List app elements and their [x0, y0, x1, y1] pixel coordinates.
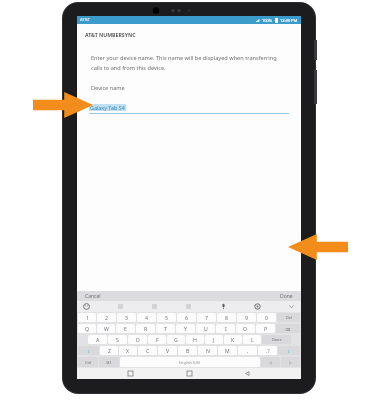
staticText: V: [166, 347, 170, 354]
button[interactable]: W: [97, 324, 115, 333]
staticText: 2: [105, 314, 108, 321]
button[interactable]: C: [138, 346, 157, 355]
staticText: Done: [280, 293, 293, 300]
button[interactable]: Y: [176, 324, 195, 333]
button[interactable]: ⌫: [276, 324, 300, 333]
button[interactable]: R: [136, 324, 155, 333]
staticText: X: [126, 347, 130, 354]
button[interactable]: H: [186, 335, 204, 344]
staticText: calls to and from this device.: [91, 64, 166, 72]
button[interactable]: J: [205, 335, 223, 344]
staticText: A: [96, 336, 100, 343]
staticText: .?: [266, 347, 270, 354]
button[interactable]: Clipboard: [116, 302, 125, 311]
button[interactable]: P: [256, 324, 275, 333]
button[interactable]: 6: [177, 313, 196, 322]
button[interactable]: Home: [184, 368, 195, 379]
staticText: 7: [205, 314, 208, 321]
staticText: Enter your device name. This name will b…: [91, 54, 277, 62]
staticText: Cancel: [85, 293, 101, 300]
button[interactable]: Done: [262, 335, 291, 344]
staticText: R: [144, 325, 148, 332]
button[interactable]: 7: [197, 313, 216, 322]
staticText: Galaxy Tab S4: [90, 104, 125, 111]
button[interactable]: 8: [217, 313, 236, 322]
button[interactable]: F: [148, 335, 166, 344]
button[interactable]: I: [216, 324, 235, 333]
button[interactable]: T: [156, 324, 175, 333]
staticText: B: [186, 347, 190, 354]
button[interactable]: ⇧: [278, 346, 300, 355]
button[interactable]: S: [108, 335, 127, 344]
button[interactable]: Cancel: [85, 293, 101, 300]
button[interactable]: !#1: [99, 357, 119, 367]
staticText: ⌫: [285, 327, 291, 331]
staticText: U: [204, 325, 208, 332]
button[interactable]: Recents: [125, 368, 136, 379]
staticText: 8: [225, 314, 228, 321]
staticText: K: [231, 336, 235, 343]
staticText: 9: [245, 314, 248, 321]
staticText: Device name: [91, 84, 125, 92]
staticText: J: [213, 336, 215, 343]
button[interactable]: Back: [242, 368, 253, 379]
button[interactable]: Del: [277, 313, 300, 322]
button[interactable]: Galaxy Tab S4: [89, 104, 289, 114]
button[interactable]: 9: [237, 313, 256, 322]
button[interactable]: Keyboard settings: [253, 302, 262, 311]
staticText: M: [225, 347, 230, 354]
button[interactable]: Hide keyboard: [287, 302, 296, 311]
button[interactable]: Modes: [184, 302, 193, 311]
button[interactable]: ▷: [281, 357, 300, 367]
staticText: Y: [184, 325, 187, 332]
button[interactable]: K: [224, 335, 242, 344]
staticText: Del: [286, 315, 292, 320]
button[interactable]: Z: [100, 346, 118, 355]
button[interactable]: N: [198, 346, 217, 355]
button[interactable]: Emoji: [82, 302, 91, 311]
button[interactable]: O: [236, 324, 255, 333]
staticText: F: [156, 336, 159, 343]
button[interactable]: Translate: [150, 302, 159, 311]
button[interactable]: Q: [78, 324, 96, 333]
staticText: Z: [108, 347, 111, 354]
button[interactable]: English (US): [120, 357, 260, 367]
button[interactable]: X: [119, 346, 137, 355]
button[interactable]: 2: [97, 313, 116, 322]
button[interactable]: G: [167, 335, 185, 344]
button[interactable]: B: [178, 346, 197, 355]
button[interactable]: 0: [257, 313, 276, 322]
button[interactable]: ⇧: [78, 346, 99, 355]
staticText: !#1: [106, 360, 112, 365]
button[interactable]: Done: [280, 293, 293, 300]
button[interactable]: 3: [117, 313, 136, 322]
staticText: 6: [185, 314, 188, 321]
staticText: AT&T: [80, 17, 90, 23]
staticText: AT&T NUMBERSYNC: [85, 31, 136, 38]
button[interactable]: M: [218, 346, 237, 355]
staticText: 12:00 PM: [280, 18, 298, 23]
button[interactable]: V: [158, 346, 177, 355]
staticText: Ctrl: [85, 360, 92, 365]
button[interactable]: .?: [258, 346, 277, 355]
button[interactable]: A: [88, 335, 107, 344]
button[interactable]: U: [196, 324, 215, 333]
button[interactable]: L: [243, 335, 261, 344]
staticText: ⇧: [87, 349, 91, 353]
staticText: W: [104, 325, 109, 332]
staticText: C: [146, 347, 150, 354]
button[interactable]: ◁: [261, 357, 280, 367]
button[interactable]: Voice input: [219, 302, 228, 311]
button[interactable]: ,: [238, 346, 257, 355]
staticText: ▷: [289, 360, 292, 364]
button[interactable]: E: [116, 324, 135, 333]
button[interactable]: 5: [157, 313, 176, 322]
staticText: 3: [125, 314, 128, 321]
staticText: D: [136, 336, 140, 343]
button[interactable]: D: [128, 335, 147, 344]
button[interactable]: 4: [137, 313, 156, 322]
staticText: O: [243, 325, 248, 332]
button[interactable]: 1: [78, 313, 96, 322]
staticText: English (US): [179, 360, 201, 365]
button[interactable]: Ctrl: [78, 357, 98, 367]
